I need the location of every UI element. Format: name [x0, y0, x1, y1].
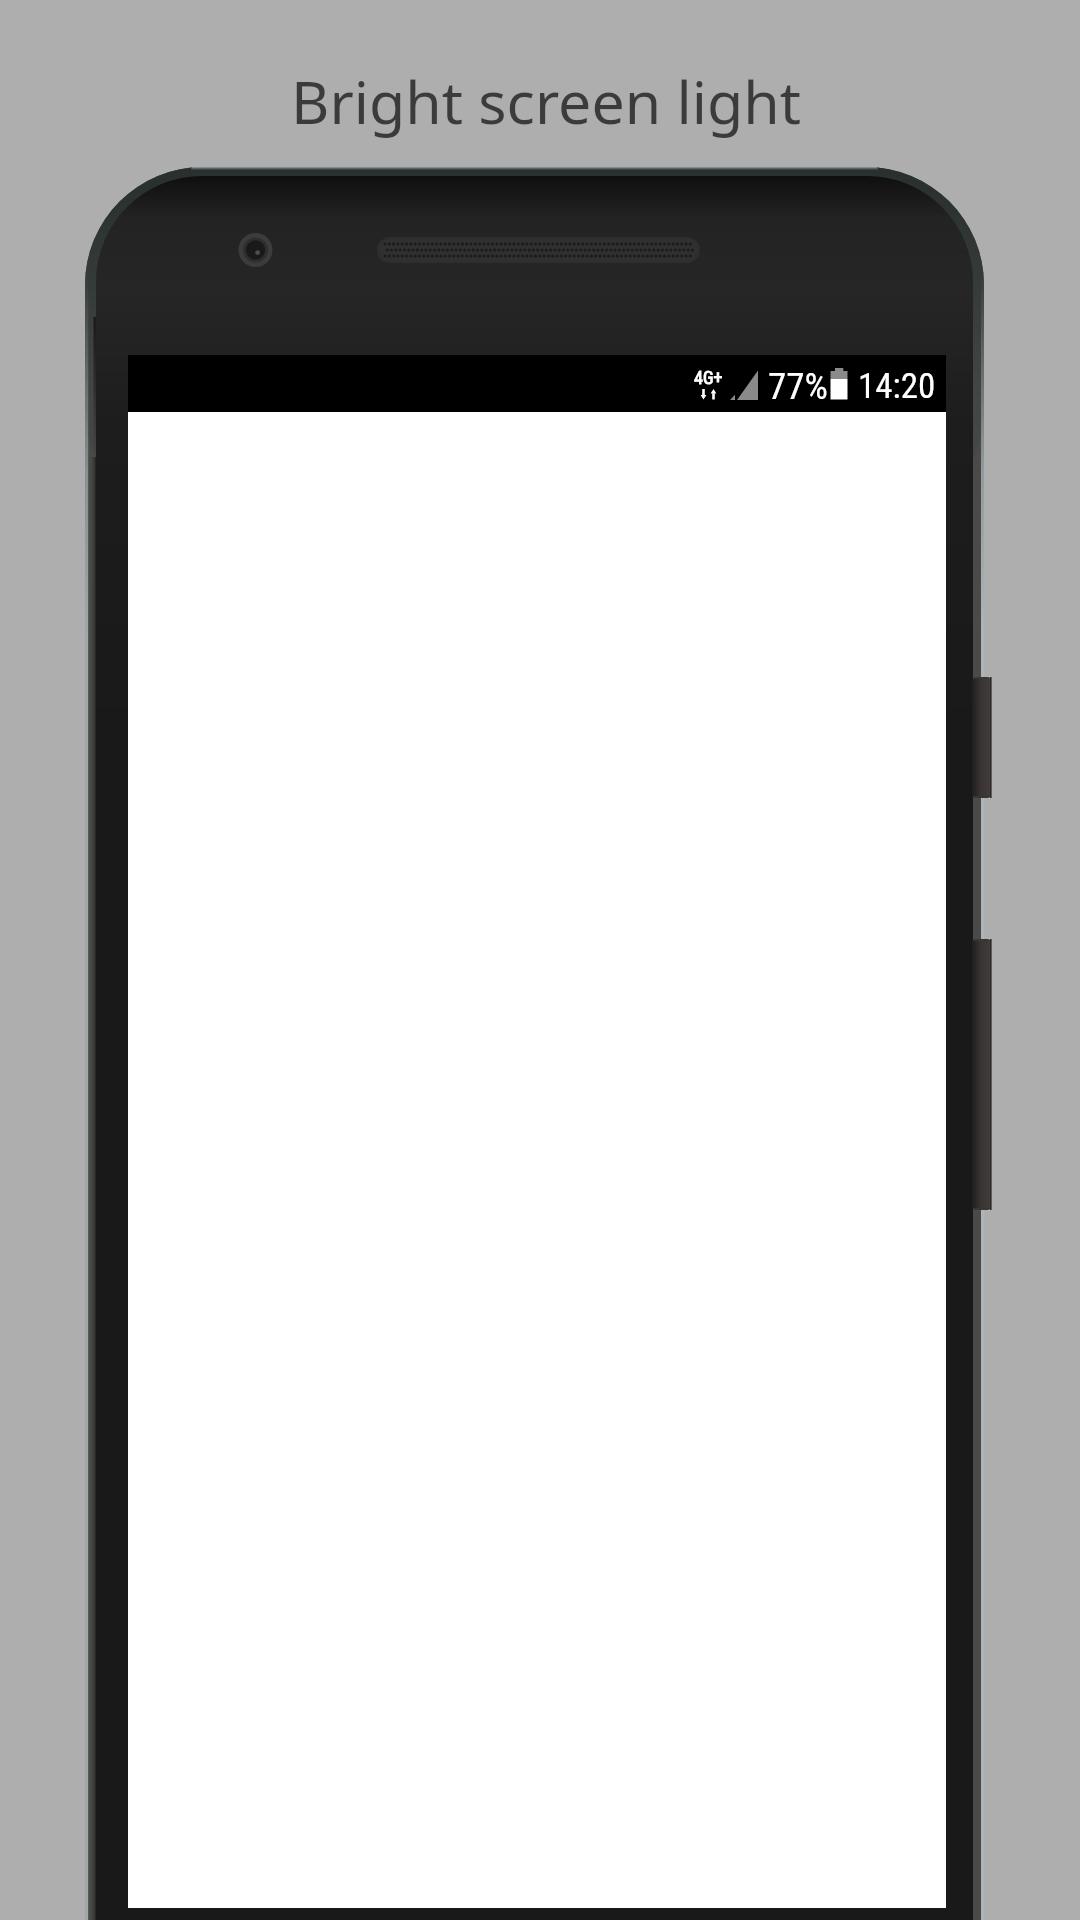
button[interactable]: Volume — [970, 677, 992, 798]
button[interactable]: Power — [970, 939, 992, 1210]
staticText: 14:20 — [858, 366, 936, 407]
staticText: Bright screen light — [291, 61, 801, 141]
staticText: 77% — [768, 365, 828, 408]
staticText: 4G+ — [694, 367, 723, 388]
